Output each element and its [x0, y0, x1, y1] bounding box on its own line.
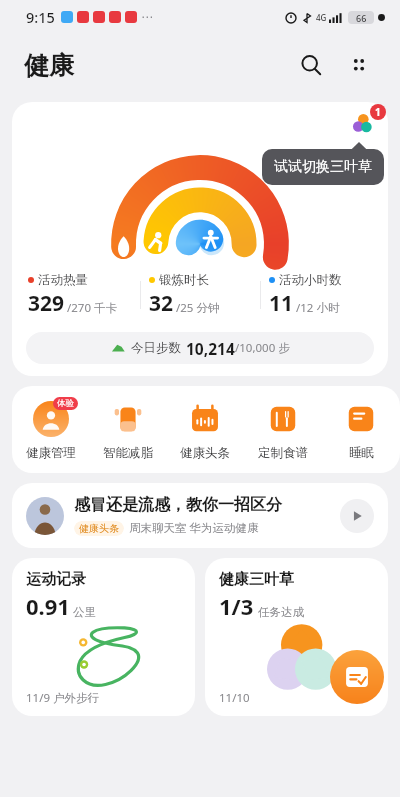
staticText: 定制食谱 [258, 445, 308, 461]
staticText: 1/3 [219, 591, 254, 621]
button[interactable]: 活动小时数 [261, 270, 380, 320]
staticText: 健康三叶草 [219, 570, 294, 589]
button[interactable]: More options [338, 44, 380, 86]
staticText: 试试切换三叶草 [274, 158, 372, 176]
button[interactable]: 定制食谱 [244, 398, 322, 461]
button[interactable]: 健康三叶草 [205, 558, 388, 716]
staticText: 活动热量 [38, 272, 88, 288]
staticText: 智能减脂 [103, 445, 153, 461]
staticText: /10,000 步 [235, 340, 290, 356]
staticText: 9:15 [26, 7, 55, 27]
button[interactable]: 感冒还是流感，教你一招区分 [12, 483, 388, 548]
staticText: 任务达成 [258, 605, 304, 619]
button[interactable]: Search [290, 44, 332, 86]
staticText: 运动记录 [26, 570, 86, 589]
button[interactable]: 运动记录 [12, 558, 195, 716]
staticText: 10,214 [186, 338, 235, 359]
staticText: 66 [356, 12, 367, 24]
button[interactable]: 体验 [12, 398, 89, 461]
button[interactable]: 活动热量 [12, 102, 388, 376]
button[interactable]: 睡眠 [322, 398, 400, 461]
button[interactable]: Play [340, 499, 374, 533]
button[interactable]: 活动热量 [20, 270, 140, 320]
staticText: ⋯ [141, 10, 153, 24]
button[interactable]: 健康头条 [166, 398, 244, 461]
staticText: 0.91 [26, 591, 70, 621]
staticText: 32 [149, 289, 174, 318]
staticText: 健康管理 [26, 445, 76, 461]
button[interactable]: 今日步数 [26, 332, 374, 364]
staticText: 11/10 [219, 690, 250, 706]
staticText: 睡眠 [349, 445, 374, 461]
staticText: 11/9 户外步行 [26, 690, 100, 706]
button[interactable]: 智能减脂 [89, 398, 166, 461]
staticText: 锻炼时长 [159, 272, 209, 288]
staticText: 健康头条 [180, 445, 230, 461]
staticText: 健康头条 [79, 522, 119, 535]
staticText: 4G [316, 12, 327, 23]
staticText: /25 分钟 [176, 300, 220, 316]
staticText: 11 [269, 289, 294, 318]
staticText: /12 小时 [296, 300, 340, 316]
staticText: 健康 [24, 50, 74, 81]
staticText: 今日步数 [131, 340, 181, 356]
staticText: 329 [28, 289, 65, 318]
staticText: 公里 [73, 605, 96, 619]
button[interactable]: 试试切换三叶草 [262, 149, 384, 185]
button[interactable]: Add record [330, 650, 384, 704]
staticText: /270 千卡 [67, 300, 118, 316]
staticText: 体验 [57, 398, 74, 409]
staticText: 感冒还是流感，教你一招区分 [74, 495, 282, 515]
staticText: 活动小时数 [279, 272, 342, 288]
button[interactable]: 锻炼时长 [141, 270, 260, 320]
staticText: 周末聊天室 华为运动健康 [129, 520, 259, 536]
button[interactable]: Switch to clover [340, 106, 384, 140]
staticText: 1 [375, 105, 381, 119]
